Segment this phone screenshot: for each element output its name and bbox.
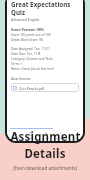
button[interactable]: More: [68, 132, 83, 140]
staticText: Score: 90 points out of 100: [11, 33, 51, 37]
staticText: Details: [24, 146, 66, 162]
staticText: Tools: [43, 137, 49, 140]
staticText: Grade Book Score: 90: [11, 38, 43, 42]
button[interactable]: Quiz Results.pdf: [11, 83, 79, 92]
staticText: Date Assigned: Tue, 11/21: [11, 47, 50, 51]
staticText: Term: 1: [11, 62, 23, 66]
staticText: Notes: Great job on this test!: [11, 67, 54, 71]
staticText: Assignment: [10, 129, 81, 145]
staticText: Category: Quizzes and Tests: [11, 57, 53, 61]
staticText: Attendance: [54, 137, 67, 140]
staticText: Score Percent: 90%: [11, 27, 44, 32]
staticText: More: [73, 137, 79, 140]
staticText: Great Expectations Quiz: [11, 0, 79, 16]
button[interactable]: Grades: [7, 132, 23, 140]
button[interactable]: Schedule: [23, 132, 38, 140]
staticText: (Even download attachments): [13, 165, 77, 171]
staticText: Grades: [11, 137, 19, 140]
button[interactable]: Attendance: [53, 132, 68, 140]
staticText: Quiz Results.pdf: [19, 86, 45, 90]
staticText: Schedule: [26, 137, 36, 140]
button[interactable]: Tools: [38, 132, 53, 140]
staticText: Date Due: Tue, 11/8: [11, 52, 41, 56]
staticText: Attachments: [11, 77, 31, 81]
staticText: Advanced English: [11, 17, 40, 22]
